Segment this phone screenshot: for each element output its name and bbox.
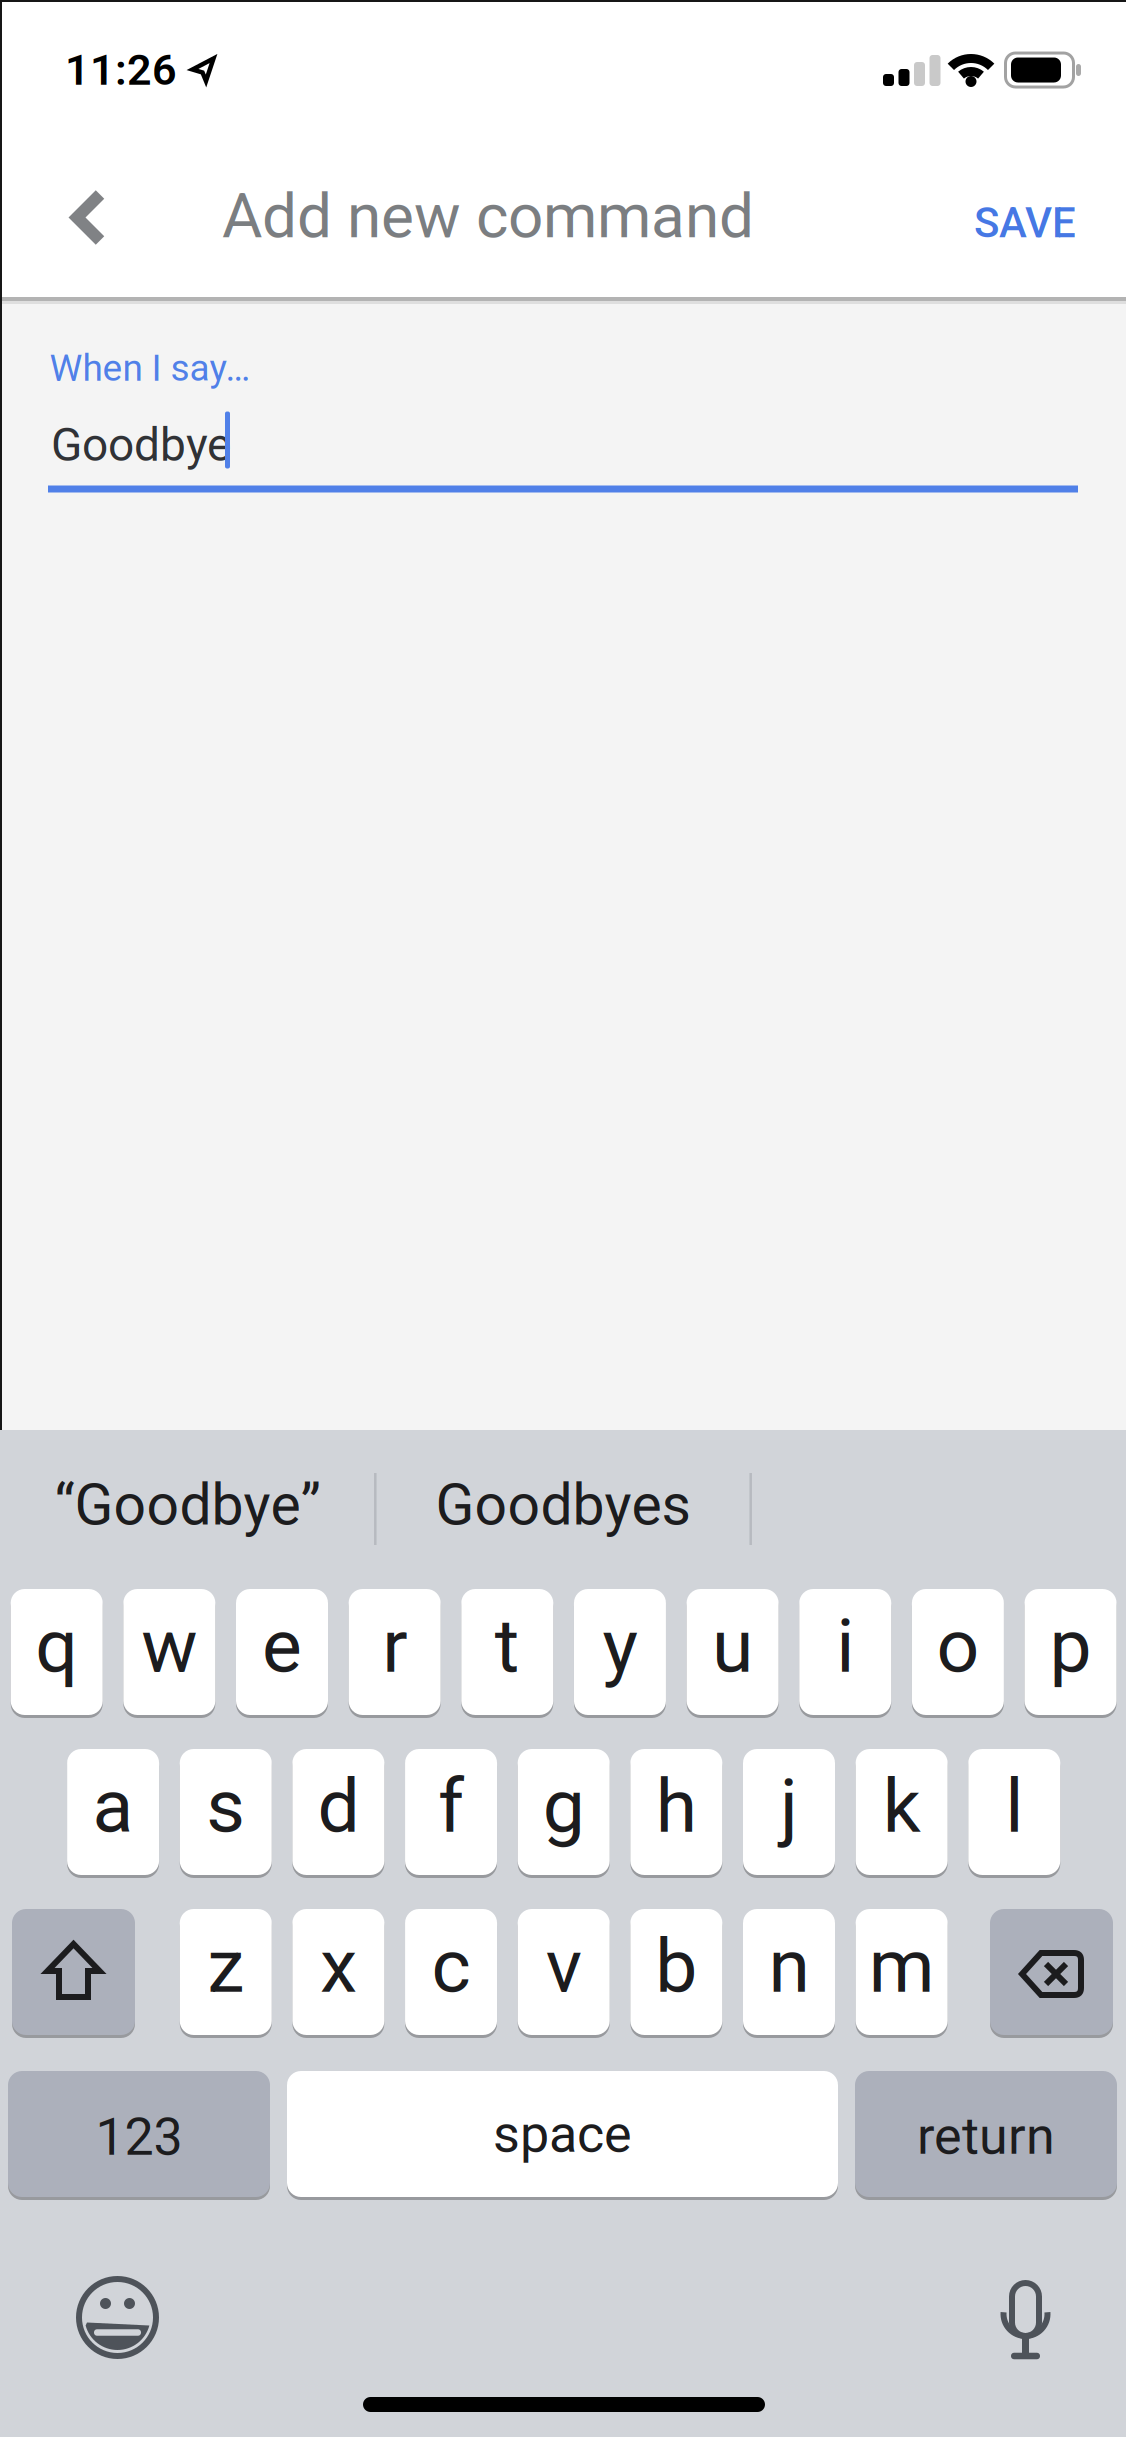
button[interactable]: p <box>1024 1589 1116 1715</box>
staticText: k <box>883 1762 921 1850</box>
staticText: space <box>493 2103 632 2164</box>
staticText: q <box>35 1602 78 1690</box>
button[interactable]: return <box>855 2071 1117 2197</box>
staticText: z <box>207 1922 244 2010</box>
staticText: a <box>93 1762 134 1850</box>
staticText: o <box>936 1602 979 1690</box>
button[interactable]: l <box>968 1749 1060 1875</box>
staticText: 123 <box>95 2106 182 2167</box>
staticText: y <box>602 1602 637 1690</box>
staticText: n <box>768 1922 809 2010</box>
button[interactable]: f <box>405 1749 497 1875</box>
button[interactable]: n <box>743 1909 835 2035</box>
staticText: Add new command <box>222 180 754 252</box>
button[interactable]: a <box>67 1749 159 1875</box>
staticText: r <box>382 1602 407 1690</box>
staticText: v <box>546 1922 582 2010</box>
button[interactable]: t <box>461 1589 553 1715</box>
staticText: When I say… <box>49 346 250 390</box>
button[interactable]: j <box>743 1749 835 1875</box>
button[interactable]: y <box>574 1589 666 1715</box>
button[interactable]: Shift <box>12 1909 135 2035</box>
button[interactable]: SAVE <box>945 178 1105 268</box>
staticText: s <box>206 1762 245 1850</box>
staticText: u <box>712 1602 753 1690</box>
staticText: c <box>432 1922 471 2010</box>
staticText: j <box>780 1762 798 1850</box>
staticText: “Goodbye” <box>54 1472 320 1538</box>
button[interactable]: space <box>287 2071 838 2197</box>
staticText: i <box>836 1602 854 1690</box>
button[interactable]: g <box>518 1749 610 1875</box>
button[interactable]: k <box>856 1749 948 1875</box>
staticText: Goodbyes <box>435 1472 690 1538</box>
staticText: SAVE <box>974 198 1076 248</box>
staticText: t <box>495 1602 520 1690</box>
staticText: 11:26 <box>65 45 177 95</box>
staticText: h <box>656 1762 697 1850</box>
staticText: return <box>917 2105 1055 2166</box>
button[interactable]: x <box>292 1909 384 2035</box>
button[interactable]: z <box>180 1909 272 2035</box>
staticText: m <box>869 1922 935 2010</box>
button[interactable]: v <box>518 1909 610 2035</box>
staticText: w <box>141 1602 197 1690</box>
button[interactable]: w <box>123 1589 215 1715</box>
staticText: b <box>655 1922 697 2010</box>
button[interactable]: o <box>912 1589 1004 1715</box>
button[interactable]: i <box>799 1589 891 1715</box>
button[interactable]: q <box>11 1589 103 1715</box>
staticText: x <box>320 1922 357 2010</box>
button[interactable]: c <box>405 1909 497 2035</box>
button[interactable]: m <box>856 1909 948 2035</box>
button[interactable]: Numbers <box>8 2071 270 2197</box>
button[interactable]: u <box>687 1589 779 1715</box>
button[interactable]: b <box>630 1909 722 2035</box>
staticText: e <box>262 1602 302 1690</box>
button[interactable]: d <box>292 1749 384 1875</box>
button[interactable]: Dictation <box>970 2265 1080 2375</box>
button[interactable]: r <box>349 1589 441 1715</box>
button[interactable]: Goodbyes <box>378 1450 748 1560</box>
button[interactable]: Emoji <box>62 2262 172 2372</box>
staticText: p <box>1049 1602 1091 1690</box>
staticText: Goodbye <box>51 418 231 472</box>
button[interactable]: e <box>236 1589 328 1715</box>
staticText: f <box>438 1762 464 1850</box>
button[interactable]: Back <box>0 166 150 269</box>
staticText: l <box>1005 1762 1023 1850</box>
button[interactable]: Command text field <box>49 393 1078 493</box>
button[interactable]: Delete <box>990 1909 1113 2035</box>
button[interactable]: h <box>630 1749 722 1875</box>
button[interactable]: “Goodbye” <box>2 1450 372 1560</box>
staticText: g <box>543 1762 585 1850</box>
staticText: d <box>317 1762 359 1850</box>
button[interactable]: s <box>180 1749 272 1875</box>
